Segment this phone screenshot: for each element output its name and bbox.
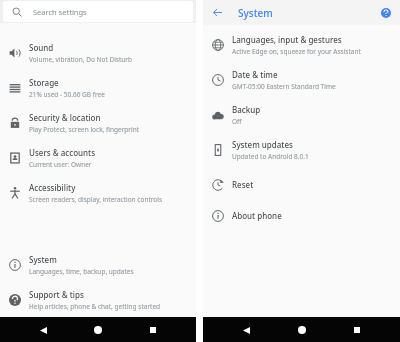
button[interactable]: System updates xyxy=(203,138,400,161)
staticText: Sound xyxy=(29,42,54,53)
staticText: Play Protect, screen lock, fingerprint xyxy=(29,125,140,134)
button[interactable]: Languages, input & gestures xyxy=(203,33,400,56)
staticText: Reset xyxy=(232,179,254,190)
staticText: Updated to Android 8.0.1 xyxy=(232,152,309,161)
button[interactable]: Storage xyxy=(0,76,196,99)
staticText: Security & location xyxy=(29,112,101,123)
staticText: 21% used - 50.66 GB free xyxy=(29,90,105,99)
staticText: Help articles, phone & chat, getting sta… xyxy=(29,302,161,311)
button[interactable]: About phone xyxy=(203,204,400,227)
button[interactable]: Backup xyxy=(203,103,400,126)
staticText: Accessibility xyxy=(29,182,76,193)
button[interactable]: Date & time xyxy=(203,68,400,91)
staticText: About phone xyxy=(232,210,282,221)
button[interactable]: Back xyxy=(234,318,258,342)
staticText: Off xyxy=(232,117,242,126)
button[interactable]: Home xyxy=(86,318,110,342)
button[interactable]: Help xyxy=(374,1,397,24)
staticText: Date & time xyxy=(232,69,278,80)
button[interactable]: Support & tips xyxy=(0,288,196,311)
staticText: Languages, time, backup, updates xyxy=(29,267,134,276)
staticText: Active Edge on, squeeze for your Assista… xyxy=(232,47,361,56)
staticText: Current user: Owner xyxy=(29,160,92,169)
button[interactable]: Sound xyxy=(0,41,196,64)
button[interactable]: Back xyxy=(31,318,55,342)
button[interactable]: System xyxy=(0,253,196,276)
button[interactable]: Search settings xyxy=(3,1,193,22)
staticText: Screen readers, display, interaction con… xyxy=(29,195,163,204)
staticText: Storage xyxy=(29,77,59,88)
staticText: Backup xyxy=(232,104,261,115)
button[interactable]: Recents xyxy=(141,318,165,342)
staticText: System xyxy=(238,6,273,20)
staticText: System xyxy=(29,254,57,265)
button[interactable]: Back xyxy=(206,1,229,24)
button[interactable]: Reset xyxy=(203,173,400,196)
button[interactable]: Security & location xyxy=(0,111,196,134)
button[interactable]: Recents xyxy=(345,318,369,342)
button[interactable]: Home xyxy=(290,318,314,342)
staticText: System updates xyxy=(232,139,293,150)
staticText: Support & tips xyxy=(29,289,84,300)
staticText: Volume, vibration, Do Not Disturb xyxy=(29,55,133,64)
staticText: GMT-05:00 Eastern Standard Time xyxy=(232,82,336,91)
staticText: Users & accounts xyxy=(29,147,96,158)
staticText: Languages, input & gestures xyxy=(232,34,342,45)
button[interactable]: Users & accounts xyxy=(0,146,196,169)
staticText: Search settings xyxy=(33,7,87,17)
button[interactable]: Accessibility xyxy=(0,181,196,204)
